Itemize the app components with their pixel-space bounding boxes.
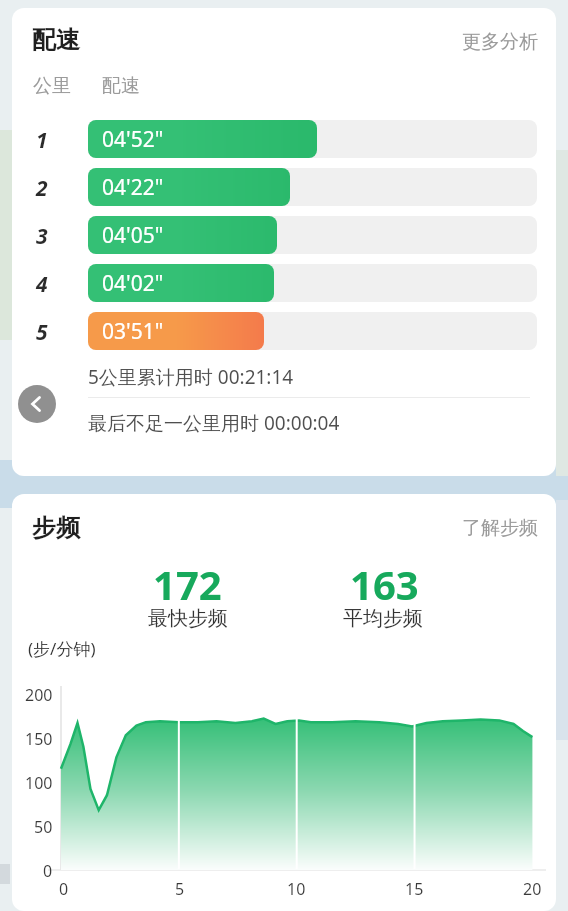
staticText: 最快步频 [148,606,228,631]
button[interactable] [88,312,264,350]
staticText: 03'51" [102,317,164,346]
staticText: 3 [36,222,48,251]
staticText: 10 [287,878,306,900]
button[interactable] [88,120,317,158]
staticText: 50 [34,816,53,838]
staticText: 配速 [102,74,140,98]
button[interactable]: 了解步频 [462,516,538,540]
staticText: 100 [25,772,53,794]
staticText: 0 [59,878,69,900]
button[interactable] [18,385,56,423]
button[interactable]: 更多分析 [462,30,538,54]
staticText: 04'02" [102,269,164,298]
staticText: 04'22" [102,173,164,202]
staticText: 5 [36,318,48,347]
staticText: 5公里累计用时 00:21:14 [88,364,294,390]
staticText: 200 [25,684,53,706]
staticText: 15 [405,878,424,900]
staticText: 150 [25,728,53,750]
button[interactable] [88,216,277,254]
staticText: 0 [43,860,53,882]
staticText: (步/分钟) [28,637,96,660]
staticText: 04'52" [102,125,164,154]
staticText: 配速 [32,25,80,55]
staticText: 步频 [32,513,80,543]
button[interactable] [88,168,290,206]
staticText: 2 [36,174,48,203]
staticText: 最后不足一公里用时 00:00:04 [88,410,340,436]
staticText: 163 [350,557,419,611]
staticText: 172 [153,557,222,611]
staticText: 20 [523,878,542,900]
staticText: 5 [175,878,185,900]
staticText: 4 [36,270,48,299]
button[interactable] [88,264,274,302]
staticText: 平均步频 [343,606,423,631]
staticText: 更多分析 [462,30,538,54]
staticText: 04'05" [102,221,164,250]
staticText: 1 [36,126,48,155]
staticText: 公里 [33,74,71,98]
staticText: 了解步频 [462,516,538,540]
